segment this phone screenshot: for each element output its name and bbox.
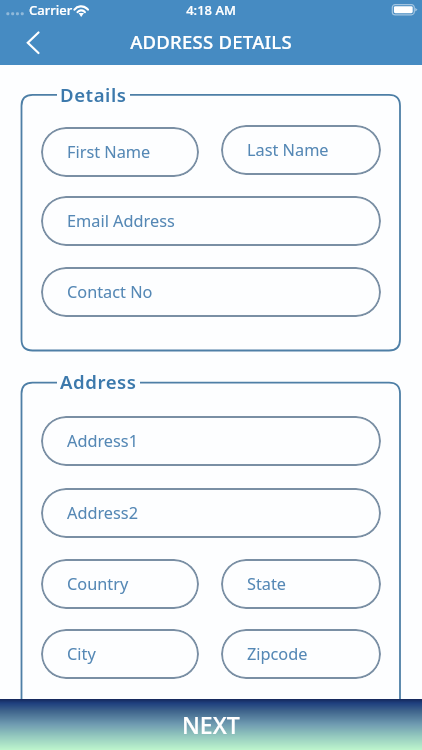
button[interactable]: First Name (41, 127, 199, 177)
staticText: NEXT (182, 709, 240, 740)
button[interactable]: Country (41, 559, 199, 609)
button[interactable]: Email Address (41, 196, 381, 246)
staticText: Country (67, 573, 129, 595)
staticText: Address2 (67, 502, 138, 524)
button[interactable]: NEXT (0, 699, 422, 750)
button[interactable]: Back (18, 28, 48, 58)
staticText: Zipcode (247, 643, 308, 665)
staticText: ADDRESS DETAILS (0, 29, 422, 54)
button[interactable]: State (221, 559, 381, 609)
staticText: Address (60, 369, 137, 394)
staticText: Carrier (29, 1, 73, 19)
staticText: Contact No (67, 281, 153, 303)
staticText: Details (60, 82, 127, 107)
staticText: State (247, 573, 287, 595)
button[interactable]: Contact No (41, 267, 381, 317)
staticText: First Name (67, 141, 151, 163)
button[interactable]: Last Name (221, 125, 381, 175)
staticText: Address1 (67, 430, 138, 452)
button[interactable]: Address1 (41, 416, 381, 466)
button[interactable]: Address2 (41, 488, 381, 538)
staticText: Last Name (247, 139, 329, 161)
staticText: Email Address (67, 210, 175, 232)
button[interactable]: Zipcode (221, 629, 381, 679)
staticText: 4:18 AM (0, 1, 422, 19)
staticText: City (67, 643, 96, 665)
button[interactable]: City (41, 629, 199, 679)
